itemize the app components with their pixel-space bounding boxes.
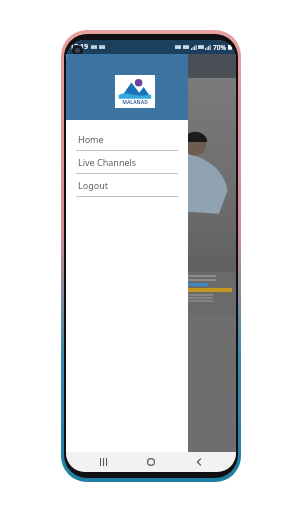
- staticText: Logout: [78, 179, 108, 191]
- staticText: Home: [78, 133, 104, 145]
- button[interactable]: Recent apps: [94, 452, 114, 472]
- button[interactable]: Logout: [66, 174, 188, 197]
- staticText: MALANAD: [122, 99, 148, 106]
- staticText: 17:19: [70, 42, 88, 52]
- staticText: Live Channels: [78, 156, 137, 168]
- button[interactable]: Home: [66, 128, 188, 151]
- button[interactable]: Back: [189, 452, 209, 472]
- staticText: 70%: [213, 43, 226, 52]
- button[interactable]: Home: [141, 452, 161, 472]
- button[interactable]: Live Channels: [66, 151, 188, 174]
